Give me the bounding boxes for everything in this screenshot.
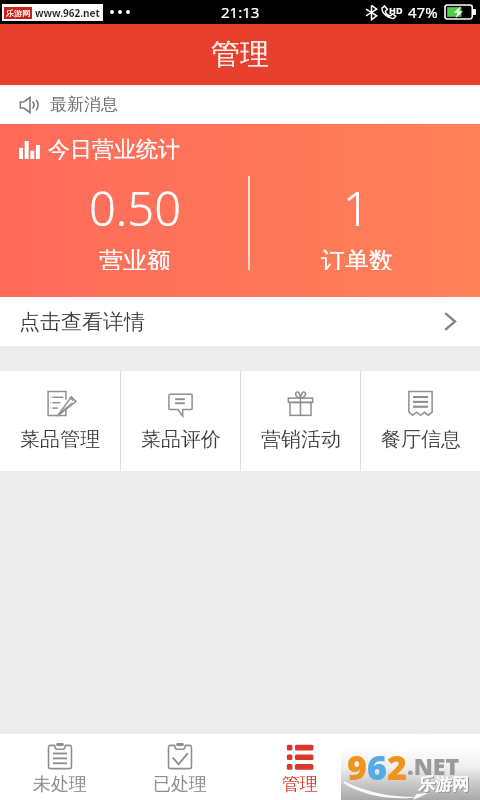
staticText: .NET bbox=[407, 750, 460, 781]
button[interactable]: 营销活动 bbox=[241, 371, 360, 471]
staticText: 0.50 bbox=[89, 176, 181, 240]
staticText: 营销活动 bbox=[261, 427, 341, 452]
staticText: 今日营业统计 bbox=[48, 136, 180, 164]
staticText: 21:13 bbox=[221, 2, 260, 22]
staticText: 管理 bbox=[282, 773, 318, 796]
staticText: 营业额 bbox=[99, 246, 171, 270]
staticText: www.962.net bbox=[35, 6, 100, 20]
staticText: 已处理 bbox=[153, 773, 207, 796]
staticText: 订单数 bbox=[321, 246, 393, 270]
button[interactable]: 菜品评价 bbox=[121, 371, 240, 471]
staticText: HD bbox=[389, 4, 403, 16]
button[interactable]: 我的 bbox=[360, 734, 480, 800]
staticText: 9 bbox=[347, 744, 367, 790]
staticText: 乐游网 bbox=[6, 8, 30, 18]
staticText: 6 bbox=[367, 744, 387, 790]
button[interactable]: 点击查看详情 bbox=[0, 297, 480, 346]
button[interactable]: 已处理 bbox=[120, 734, 240, 800]
staticText: 未处理 bbox=[33, 773, 87, 796]
staticText: 乐游网 bbox=[419, 775, 470, 796]
button[interactable]: 未处理 bbox=[0, 734, 120, 800]
staticText: 乐游网 bbox=[418, 774, 469, 795]
staticText: 管理 bbox=[211, 36, 269, 73]
staticText: 1 bbox=[343, 176, 370, 240]
staticText: 菜品评价 bbox=[141, 427, 221, 452]
staticText: 点击查看详情 bbox=[19, 309, 145, 335]
button[interactable]: 餐厅信息 bbox=[361, 371, 480, 471]
staticText: 47% bbox=[408, 2, 438, 22]
staticText: 最新消息 bbox=[50, 94, 118, 115]
staticText: 菜品管理 bbox=[20, 427, 100, 452]
button[interactable]: 管理 bbox=[240, 734, 360, 800]
staticText: 餐厅信息 bbox=[381, 427, 461, 452]
staticText: 2 bbox=[387, 744, 407, 790]
button[interactable]: 最新消息 bbox=[0, 85, 480, 124]
button[interactable]: 菜品管理 bbox=[0, 371, 120, 471]
